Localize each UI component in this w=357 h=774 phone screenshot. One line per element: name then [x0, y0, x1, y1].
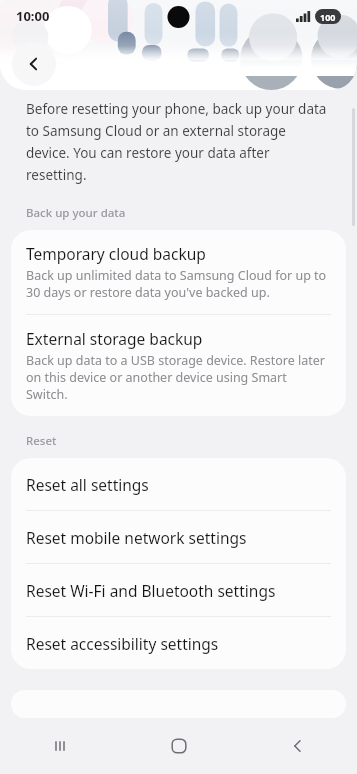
staticText: 10:00 [16, 7, 50, 25]
button[interactable]: Back [238, 718, 357, 774]
button[interactable]: Reset all settings [11, 458, 346, 510]
staticText: Before resetting your phone, back up you… [26, 100, 331, 184]
staticText: External storage backup [26, 328, 203, 349]
button[interactable]: Home [119, 718, 238, 774]
button[interactable]: Reset accessibility settings [11, 617, 346, 669]
staticText: 100 [320, 11, 336, 23]
staticText: Reset mobile network settings [26, 527, 247, 548]
button[interactable]: Temporary cloud backup [11, 230, 346, 314]
staticText: Reset [26, 433, 57, 449]
staticText: Reset accessibility settings [26, 633, 219, 654]
button[interactable]: External storage backup [11, 315, 346, 416]
button[interactable]: Back [12, 42, 56, 86]
button[interactable]: Reset mobile network settings [11, 511, 346, 563]
staticText: Back up unlimited data to Samsung Cloud … [26, 267, 331, 301]
staticText: Back up data to a USB storage device. Re… [26, 352, 331, 403]
button[interactable]: Recents [0, 718, 119, 774]
staticText: Back up your data [26, 205, 126, 221]
button[interactable]: Reset Wi-Fi and Bluetooth settings [11, 564, 346, 616]
staticText: Temporary cloud backup [26, 243, 206, 264]
staticText: Reset all settings [26, 474, 149, 495]
staticText: Reset Wi-Fi and Bluetooth settings [26, 580, 276, 601]
